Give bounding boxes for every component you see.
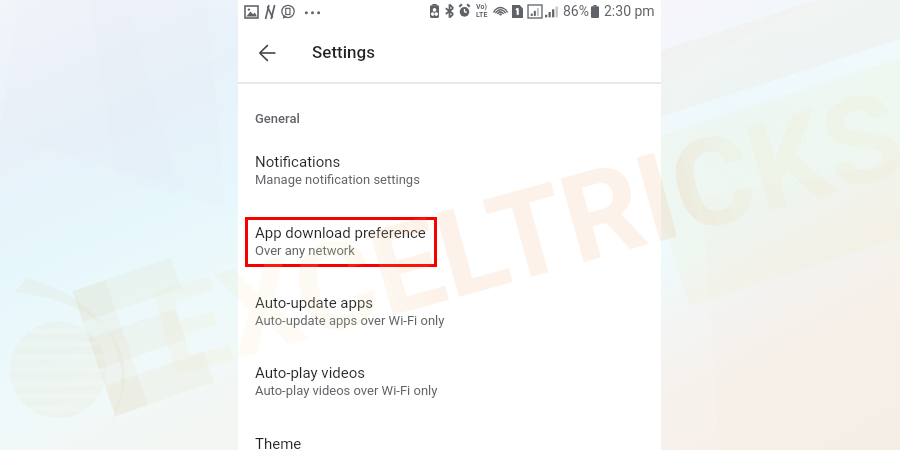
staticText: EXCELTRICKS — [139, 63, 900, 406]
staticText: Vo) — [476, 3, 487, 11]
button[interactable]: Notifications — [238, 153, 661, 197]
staticText: Over any network — [255, 243, 355, 258]
button[interactable]: Back — [246, 32, 288, 74]
staticText: Auto-update apps over Wi-Fi only — [255, 313, 445, 328]
staticText: LTE — [476, 11, 488, 19]
button[interactable]: Auto-play videos — [238, 364, 661, 408]
staticText: Theme — [255, 435, 302, 450]
staticText: Notifications — [255, 153, 341, 171]
staticText: Manage notification settings — [255, 172, 420, 187]
staticText: Settings — [312, 42, 375, 62]
staticText: General — [255, 111, 300, 126]
button[interactable]: App download preference — [245, 217, 437, 267]
staticText: 86% — [563, 3, 589, 19]
button[interactable]: Theme — [238, 433, 661, 450]
staticText: App download preference — [255, 224, 426, 242]
staticText: Auto-play videos over Wi-Fi only — [255, 383, 438, 398]
staticText: Auto-update apps — [255, 294, 374, 312]
staticText: 2:30 pm — [604, 3, 655, 19]
button[interactable]: Auto-update apps — [238, 294, 661, 338]
staticText: Auto-play videos — [255, 364, 365, 382]
